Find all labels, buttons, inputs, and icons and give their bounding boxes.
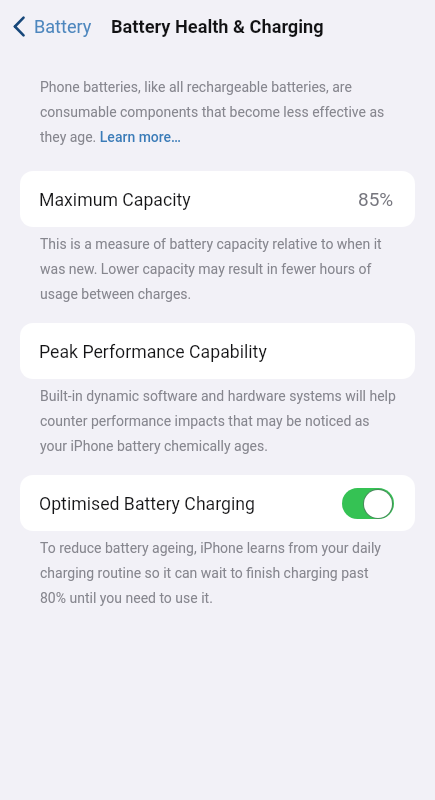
staticText: This is a measure of battery capacity re… bbox=[40, 236, 382, 302]
button[interactable]: Optimised Battery Charging bbox=[20, 475, 415, 531]
button[interactable]: Maximum Capacity bbox=[20, 171, 415, 227]
staticText: Peak Performance Capability bbox=[39, 342, 267, 363]
button[interactable]: Peak Performance Capability bbox=[20, 323, 415, 379]
staticText: Built-in dynamic software and hardware s… bbox=[40, 388, 396, 454]
staticText: Optimised Battery Charging bbox=[39, 494, 256, 515]
button[interactable]: Back bbox=[0, 10, 98, 43]
other: Back bbox=[13, 16, 25, 37]
staticText: 85% bbox=[358, 188, 394, 210]
staticText: Battery Health & Charging bbox=[111, 16, 324, 37]
staticText: Phone batteries, like all rechargeable b… bbox=[40, 79, 385, 145]
button[interactable]: Optimised Battery Charging bbox=[342, 488, 394, 519]
staticText: To reduce battery ageing, iPhone learns … bbox=[40, 540, 381, 606]
staticText: Maximum Capacity bbox=[39, 190, 191, 211]
staticText: Battery bbox=[34, 16, 92, 37]
